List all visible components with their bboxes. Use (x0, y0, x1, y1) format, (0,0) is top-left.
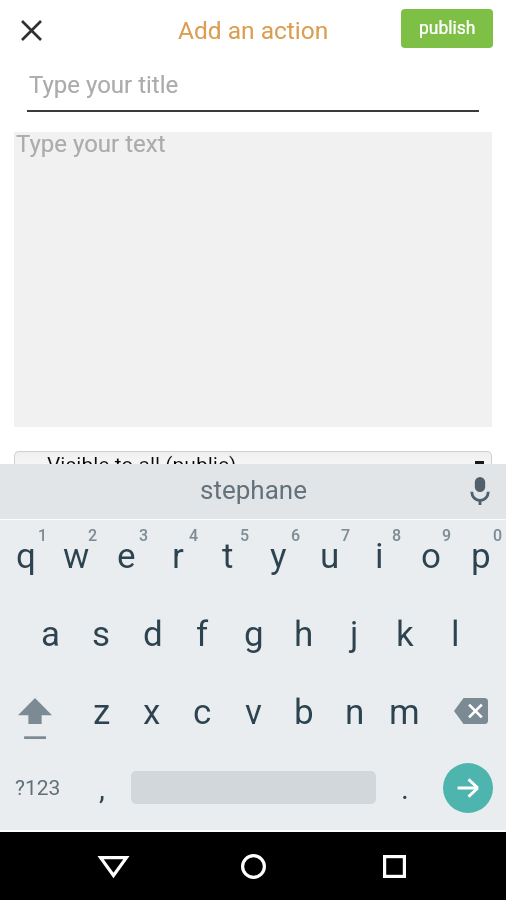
staticText: a (41, 614, 61, 655)
staticText: stephane (200, 475, 307, 505)
button[interactable]: q (0, 530, 51, 582)
staticText: s (92, 614, 111, 655)
staticText: 9 (442, 526, 452, 545)
staticText: Add an action (178, 16, 329, 45)
staticText: e (117, 536, 136, 577)
button[interactable]: . (384, 763, 426, 813)
staticText: c (193, 692, 212, 733)
button[interactable]: , (80, 763, 124, 813)
button[interactable]: p (455, 530, 506, 582)
button[interactable]: Voice input (462, 473, 498, 509)
staticText: Type your title (29, 71, 179, 99)
button[interactable]: e (101, 530, 152, 582)
staticText: j (350, 614, 359, 655)
staticText: i (375, 536, 384, 577)
staticText: publish (419, 18, 476, 39)
staticText: o (421, 536, 441, 577)
staticText: t (222, 536, 234, 577)
button[interactable]: m (379, 686, 430, 738)
button[interactable]: f (177, 608, 228, 660)
button[interactable]: j (329, 608, 380, 660)
button[interactable]: ?123 (7, 763, 69, 813)
staticText: 5 (240, 526, 250, 545)
button[interactable]: w (51, 530, 102, 582)
button[interactable]: t (202, 530, 253, 582)
button[interactable]: g (228, 608, 279, 660)
staticText: 8 (392, 526, 402, 545)
staticText: n (345, 692, 365, 733)
staticText: z (93, 692, 111, 733)
button[interactable]: z (76, 686, 127, 738)
button[interactable]: o (405, 530, 456, 582)
staticText: d (143, 614, 163, 655)
button[interactable]: Shift (18, 698, 52, 740)
button[interactable]: x (126, 686, 177, 738)
staticText: 3 (139, 526, 149, 545)
button[interactable]: c (177, 686, 228, 738)
button[interactable]: s (76, 608, 127, 660)
button[interactable]: Visible to all (public) (15, 452, 491, 494)
button[interactable]: u (304, 530, 355, 582)
staticText: r (172, 536, 184, 577)
staticText: 1 (38, 526, 48, 545)
button[interactable]: Recent apps (366, 838, 422, 894)
staticText: b (294, 692, 314, 733)
button[interactable]: b (278, 686, 329, 738)
staticText: 6 (291, 526, 301, 545)
button[interactable]: publish (401, 9, 493, 48)
staticText: 2 (88, 526, 98, 545)
staticText: v (245, 692, 262, 733)
button[interactable]: d (127, 608, 178, 660)
staticText: x (143, 692, 161, 733)
staticText: Type your text (16, 130, 166, 158)
staticText: ?123 (15, 776, 61, 801)
staticText: w (63, 536, 90, 577)
button[interactable]: y (253, 530, 304, 582)
button[interactable]: Close (10, 9, 52, 51)
staticText: . (401, 771, 409, 806)
staticText: p (471, 536, 491, 577)
button[interactable]: i (354, 530, 405, 582)
button[interactable]: Back (85, 838, 141, 894)
button[interactable]: a (25, 608, 76, 660)
button[interactable]: h (278, 608, 329, 660)
button[interactable]: Home (225, 838, 281, 894)
staticText: 0 (493, 526, 503, 545)
button[interactable]: n (329, 686, 380, 738)
staticText: q (16, 536, 36, 577)
staticText: k (396, 614, 414, 655)
staticText: u (320, 536, 340, 577)
staticText: 7 (341, 526, 351, 545)
staticText: l (451, 614, 460, 655)
staticText: y (270, 536, 287, 577)
button[interactable]: Backspace (454, 698, 488, 724)
button[interactable]: k (379, 608, 430, 660)
staticText: f (196, 614, 209, 655)
button[interactable]: r (152, 530, 203, 582)
button[interactable]: v (228, 686, 279, 738)
staticText: 4 (189, 526, 199, 545)
staticText: g (244, 614, 264, 655)
staticText: Visible to all (public) (47, 453, 237, 478)
staticText: , (99, 771, 105, 806)
staticText: m (389, 692, 420, 733)
staticText: h (294, 614, 314, 655)
button[interactable]: Enter (443, 763, 493, 813)
button[interactable]: l (430, 608, 481, 660)
